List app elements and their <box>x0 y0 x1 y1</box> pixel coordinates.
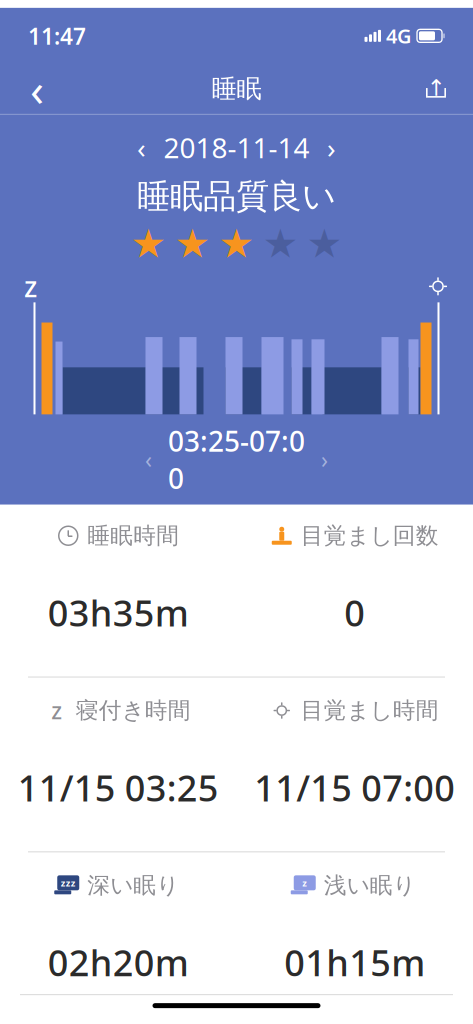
button[interactable]: Next day <box>311 130 351 164</box>
button[interactable]: Back <box>14 66 60 112</box>
staticText: 11/15 07:00 <box>254 763 455 811</box>
staticText: zzz <box>61 877 76 889</box>
staticText: 睡眠時間 <box>87 522 179 550</box>
button[interactable]: Previous period <box>130 444 166 476</box>
staticText: ‹ <box>137 129 146 166</box>
staticText: 目覚まし時間 <box>301 697 439 724</box>
staticText: ★ <box>130 221 166 266</box>
staticText: ‹ <box>145 444 152 475</box>
staticText: ★ <box>306 221 342 266</box>
staticText: 11/15 03:25 <box>18 763 219 811</box>
staticText: 睡眠 <box>211 73 261 104</box>
staticText: z <box>302 877 307 889</box>
staticText: ↑ <box>426 75 445 101</box>
staticText: 03:25-07:00 <box>168 422 305 497</box>
staticText: 2018-11-14 <box>163 129 309 166</box>
staticText: z <box>24 268 37 305</box>
staticText: ★ <box>174 221 210 266</box>
staticText: › <box>321 444 328 475</box>
staticText: 02h20m <box>48 938 189 986</box>
staticText: ★ <box>218 221 254 266</box>
button[interactable]: Next period <box>306 444 342 476</box>
staticText: ‹ <box>30 59 44 119</box>
staticText: 0 <box>344 589 365 636</box>
staticText: 11:47 <box>28 21 86 51</box>
staticText: 目覚まし回数 <box>301 522 439 550</box>
staticText: 01h15m <box>284 938 425 986</box>
staticText: ★ <box>262 221 298 266</box>
staticText: 03h35m <box>48 589 189 636</box>
staticText: 睡眠品質良い <box>137 176 336 217</box>
button[interactable]: Previous day <box>121 130 161 164</box>
button[interactable]: Share <box>413 66 459 112</box>
staticText: 4G <box>386 23 412 49</box>
staticText: 寝付き時間 <box>76 697 191 724</box>
staticText: 深い眠り <box>87 871 179 899</box>
staticText: › <box>327 129 336 166</box>
staticText: 浅い眠り <box>324 871 416 899</box>
staticText: z <box>51 695 62 726</box>
